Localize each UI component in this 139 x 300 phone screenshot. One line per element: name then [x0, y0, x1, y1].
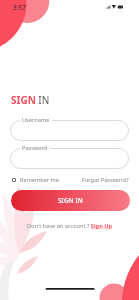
- staticText: 3:57: [13, 3, 26, 12]
- button[interactable]: [10, 120, 129, 141]
- staticText: SIGN IN: [11, 93, 50, 107]
- button[interactable]: SIGN IN: [11, 190, 130, 211]
- button[interactable]: Remember me: [12, 176, 59, 184]
- staticText: SIGN IN: [58, 196, 83, 205]
- button[interactable]: Don't have an account ? Sign Up: [27, 222, 113, 230]
- button[interactable]: Forgot Password?: [82, 176, 129, 184]
- staticText: Remember me: [20, 176, 59, 184]
- button[interactable]: [10, 148, 129, 169]
- staticText: Username: [22, 116, 50, 124]
- staticText: Password: [22, 144, 48, 152]
